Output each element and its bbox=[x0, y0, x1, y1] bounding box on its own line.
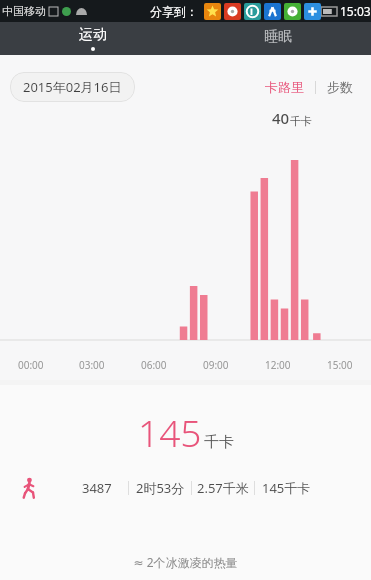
staticText: 运动 bbox=[79, 26, 107, 44]
staticText: 睡眠 bbox=[264, 28, 292, 46]
staticText: 15:03 bbox=[340, 3, 371, 19]
button[interactable]: 微博 bbox=[224, 3, 241, 20]
staticText: 00:00 bbox=[18, 358, 44, 372]
button[interactable]: 睡眠 bbox=[185, 22, 371, 55]
staticText: 145千卡 bbox=[262, 479, 311, 497]
staticText: 千卡 bbox=[204, 433, 234, 452]
staticText: 2015年02月16日 bbox=[23, 78, 122, 96]
staticText: 145 bbox=[138, 407, 202, 457]
staticText: 40 bbox=[272, 108, 290, 128]
staticText: 15:00 bbox=[327, 358, 353, 372]
staticText: 步数 bbox=[327, 79, 353, 95]
button[interactable]: 卡路里 bbox=[261, 75, 308, 99]
button[interactable]: 运动 bbox=[0, 22, 185, 55]
button[interactable]: 微信 bbox=[284, 3, 301, 20]
button[interactable]: 收藏 bbox=[204, 3, 221, 20]
button[interactable]: 2015年02月16日 bbox=[10, 72, 135, 102]
button[interactable]: 步数 bbox=[323, 75, 357, 99]
button[interactable]: 联系人 bbox=[264, 3, 281, 20]
button[interactable]: 分享 bbox=[244, 3, 261, 20]
staticText: 12:00 bbox=[265, 358, 291, 372]
staticText: 分享到： bbox=[150, 4, 198, 19]
staticText: ≈ 2个冰激凌的热量 bbox=[0, 554, 371, 570]
staticText: 3487 bbox=[82, 479, 112, 497]
staticText: 2时53分 bbox=[136, 479, 185, 497]
staticText: 03:00 bbox=[79, 358, 105, 372]
staticText: 06:00 bbox=[141, 358, 167, 372]
button[interactable]: 更多 bbox=[304, 3, 321, 20]
staticText: 中国移动 bbox=[2, 4, 46, 18]
staticText: 千卡 bbox=[290, 114, 312, 128]
staticText: 卡路里 bbox=[265, 79, 304, 95]
staticText: 2.57千米 bbox=[197, 479, 249, 497]
staticText: 09:00 bbox=[203, 358, 229, 372]
